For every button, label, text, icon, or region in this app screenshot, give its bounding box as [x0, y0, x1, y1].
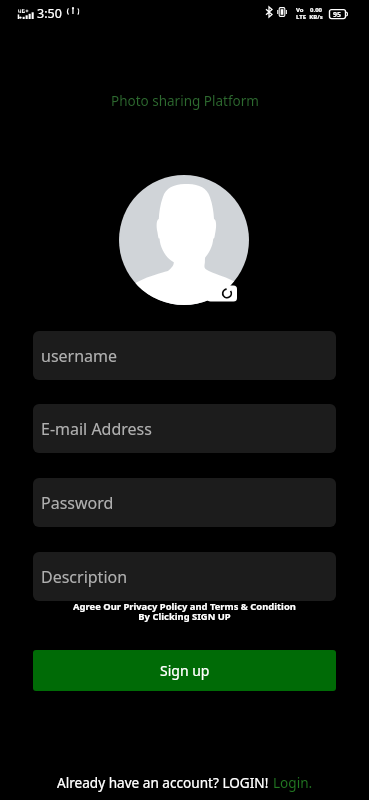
button[interactable]: username: [33, 331, 336, 380]
button[interactable]: Choose profile photo: [119, 175, 249, 305]
staticText: Description: [41, 566, 128, 588]
staticText: E-mail Address: [41, 418, 152, 440]
staticText: Sign up: [160, 661, 210, 680]
staticText: Password: [41, 492, 114, 514]
staticText: 0.00 KB/s: [309, 6, 323, 21]
button[interactable]: Login.: [273, 773, 313, 792]
staticText: 3:50: [37, 5, 62, 22]
staticText: username: [41, 345, 118, 367]
button[interactable]: Password: [33, 478, 336, 527]
button[interactable]: Sign up: [33, 650, 336, 691]
button[interactable]: Description: [33, 552, 336, 601]
staticText: 95: [333, 10, 342, 20]
staticText: Vo LTE: [296, 6, 307, 21]
staticText: Photo sharing Platform: [111, 92, 259, 110]
staticText: Already have an account? LOGIN!: [57, 773, 269, 792]
staticText: Agree Our Privacy Policy and Terms & Con…: [0, 600, 369, 623]
button[interactable]: E-mail Address: [33, 404, 336, 453]
staticText: Login.: [273, 773, 313, 792]
